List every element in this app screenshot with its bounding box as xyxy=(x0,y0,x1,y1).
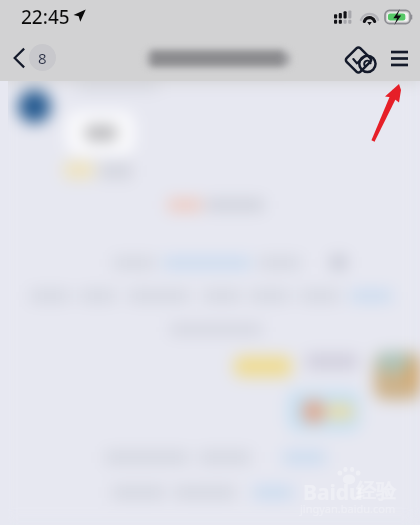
staticText: Baidu xyxy=(303,478,363,507)
staticText: 8 xyxy=(38,48,47,68)
button[interactable]: Back xyxy=(10,40,60,75)
staticText: 22:45 xyxy=(21,4,70,30)
staticText: 经验 xyxy=(356,479,396,504)
other: Back xyxy=(14,48,25,68)
button[interactable]: Menu xyxy=(381,41,415,75)
button[interactable]: Coupon xyxy=(342,40,378,76)
